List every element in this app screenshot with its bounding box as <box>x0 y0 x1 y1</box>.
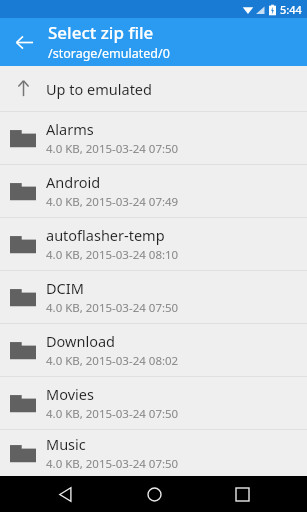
staticText: Alarms <box>46 119 94 139</box>
button[interactable]: Music <box>0 430 307 476</box>
button[interactable]: Back <box>42 476 88 512</box>
staticText: /storage/emulated/0 <box>48 45 170 62</box>
button[interactable]: Android <box>0 165 307 217</box>
staticText: Music <box>46 434 86 454</box>
staticText: 4.0 KB, 2015-03-24 07:50 <box>46 300 179 316</box>
staticText: Android <box>46 172 101 192</box>
button[interactable]: Alarms <box>0 112 307 164</box>
staticText: 4.0 KB, 2015-03-24 08:10 <box>46 247 179 263</box>
staticText: DCIM <box>46 278 84 298</box>
staticText: 4.0 KB, 2015-03-24 07:49 <box>46 194 179 210</box>
button[interactable]: Home <box>131 476 177 512</box>
staticText: 5:44 <box>280 2 302 17</box>
button[interactable]: Up to emulated <box>0 66 307 111</box>
staticText: 4.0 KB, 2015-03-24 07:50 <box>46 406 179 422</box>
staticText: 4.0 KB, 2015-03-24 07:50 <box>46 456 179 472</box>
button[interactable]: Back <box>0 18 48 66</box>
button[interactable]: autoflasher-temp <box>0 218 307 270</box>
staticText: Movies <box>46 384 94 404</box>
button[interactable]: Download <box>0 324 307 376</box>
staticText: 4.0 KB, 2015-03-24 07:50 <box>46 141 179 157</box>
staticText: Download <box>46 331 115 351</box>
button[interactable]: DCIM <box>0 271 307 323</box>
staticText: autoflasher-temp <box>46 225 165 245</box>
staticText: 4.0 KB, 2015-03-24 08:02 <box>46 353 179 369</box>
staticText: Select zip file <box>48 21 154 44</box>
staticText: Up to emulated <box>46 79 152 99</box>
button[interactable]: Recent apps <box>219 476 265 512</box>
button[interactable]: Movies <box>0 377 307 429</box>
